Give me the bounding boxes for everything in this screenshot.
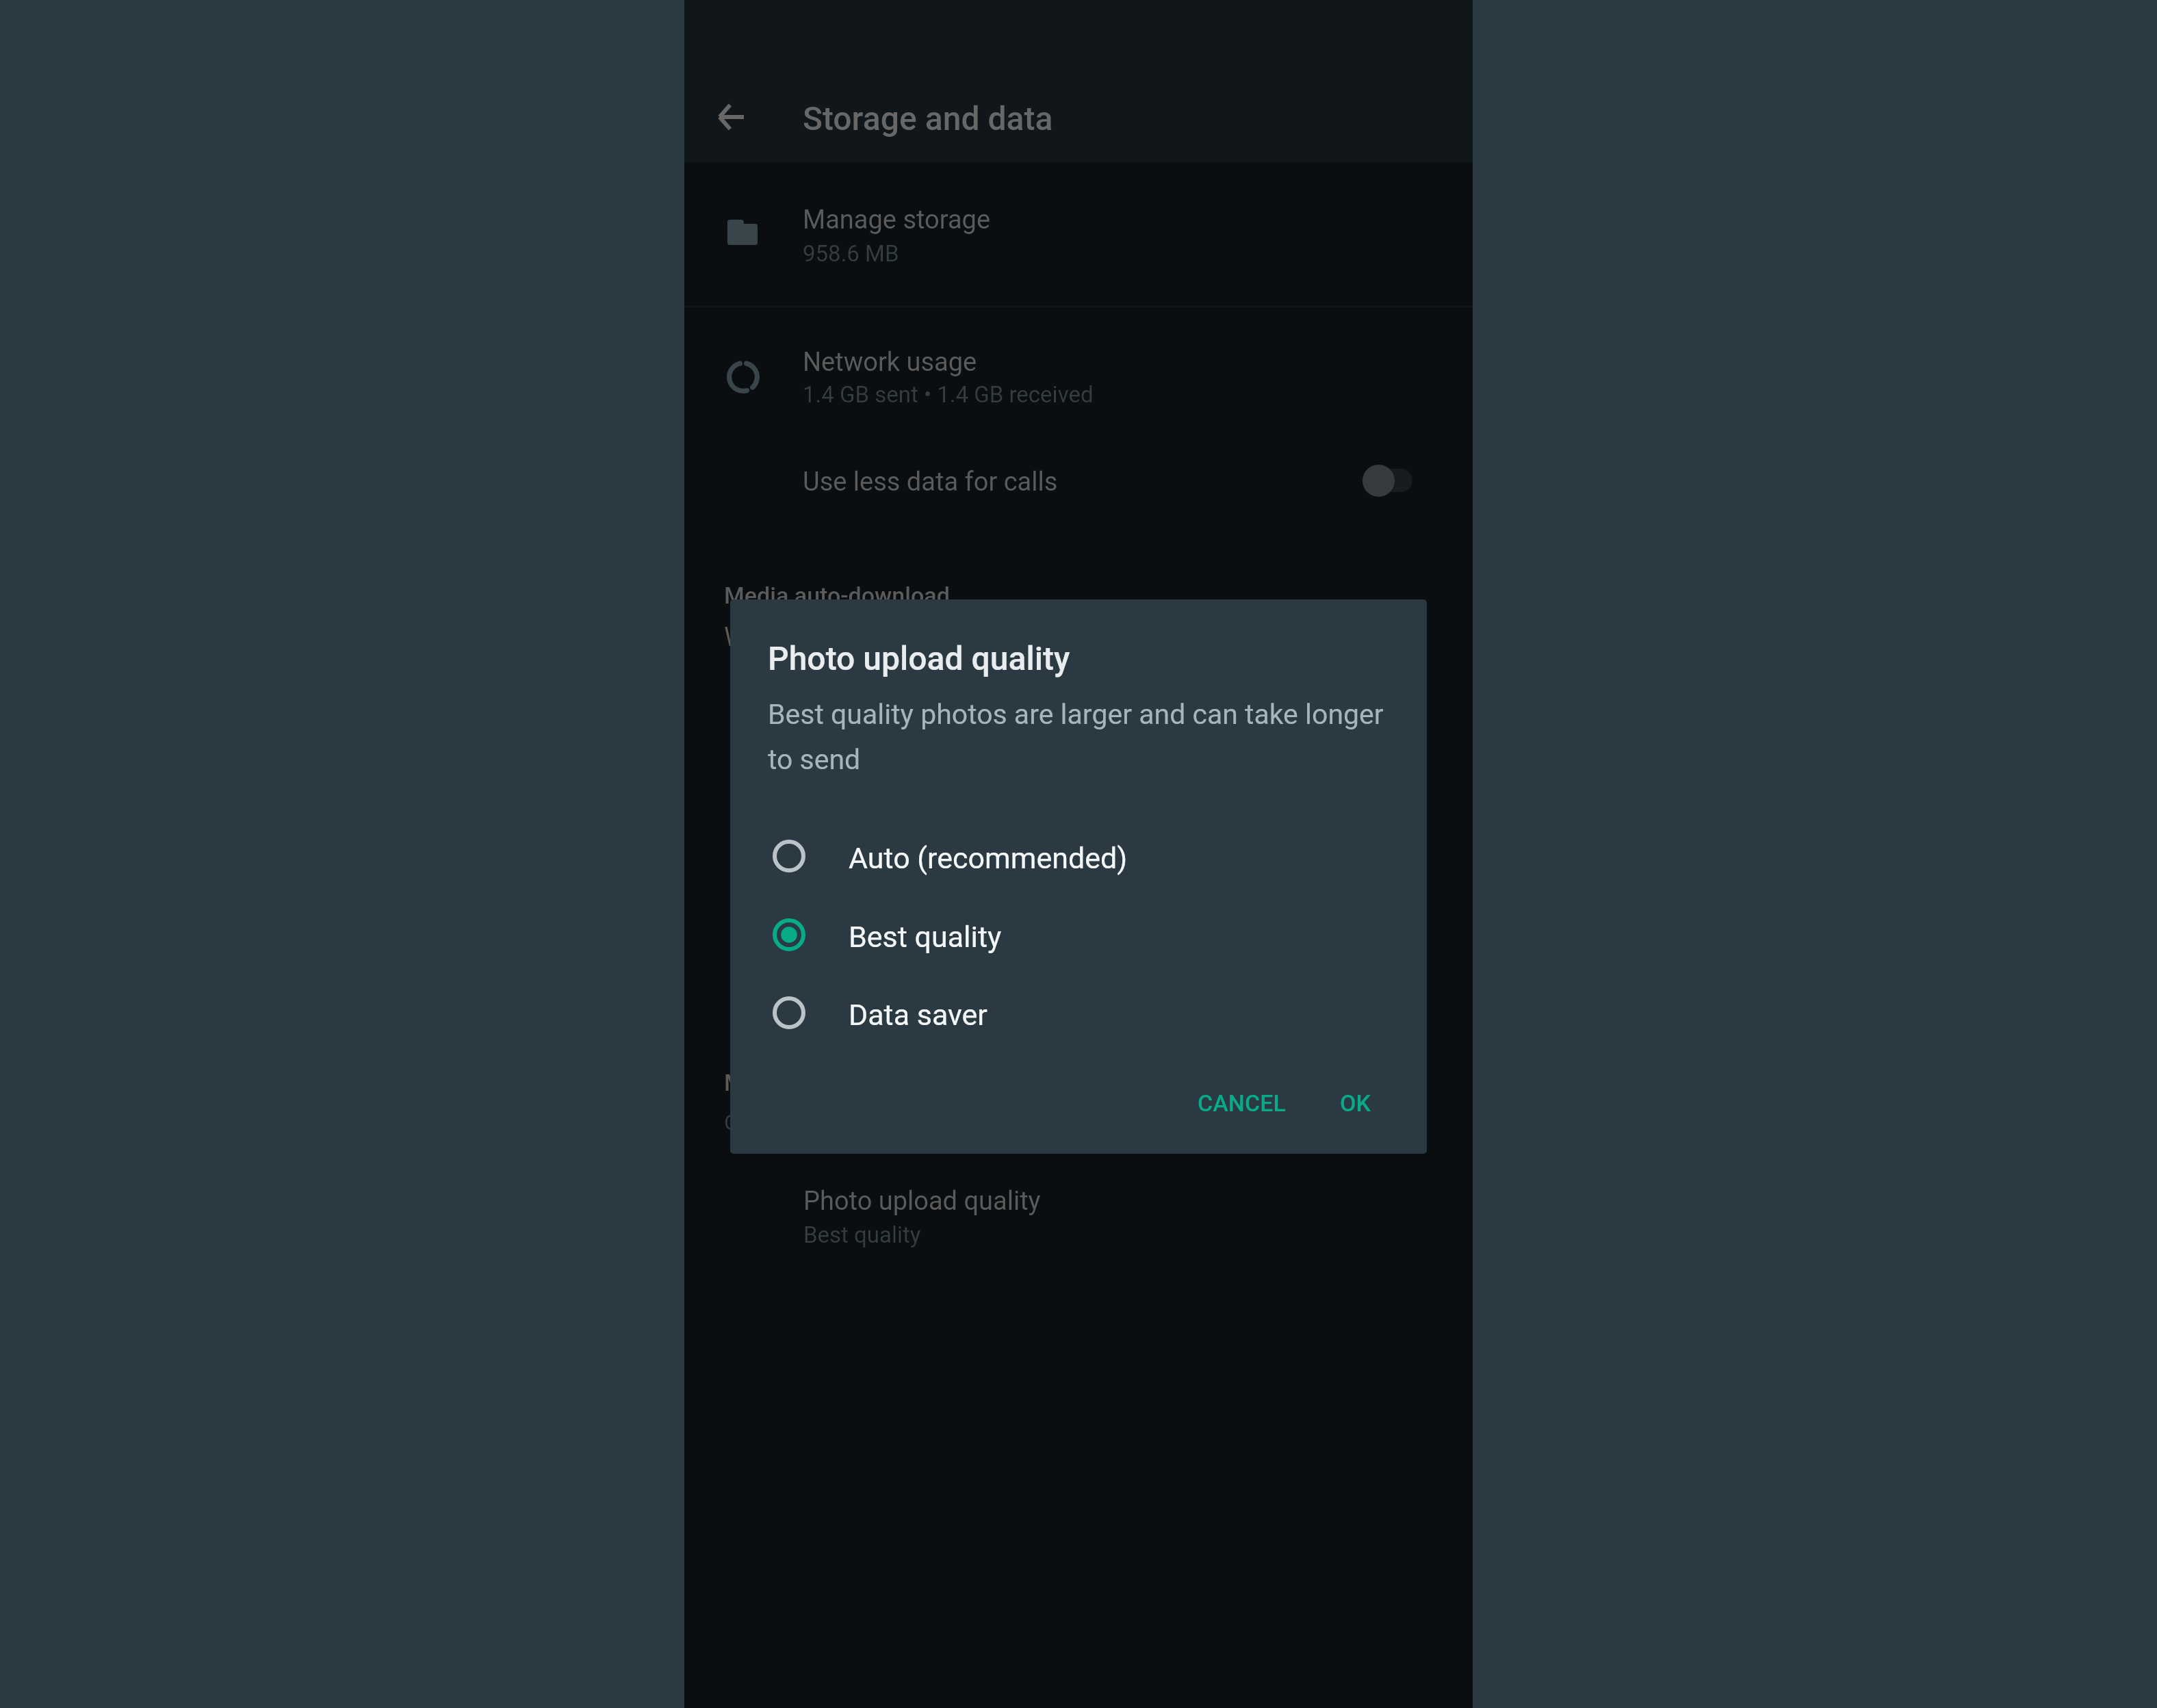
- staticText: When using mobile data: [724, 622, 1003, 653]
- staticText: Data saver: [849, 998, 987, 1032]
- staticText: Network usage: [803, 347, 977, 378]
- button[interactable]: Data saver: [730, 974, 1427, 1052]
- button[interactable]: Photo upload quality: [684, 1163, 1473, 1273]
- staticText: Auto (recommended): [849, 841, 1128, 875]
- button[interactable]: Best quality: [730, 896, 1427, 974]
- staticText: Media auto-download: [724, 582, 950, 609]
- staticText: CANCEL: [1198, 1089, 1286, 1117]
- staticText: Best quality: [849, 920, 1002, 954]
- staticText: Manage storage: [803, 205, 991, 235]
- staticText: Choose the upload quality: [724, 1109, 977, 1135]
- staticText: to send: [768, 743, 861, 776]
- staticText: Photo upload quality: [768, 639, 1070, 677]
- staticText: 1.4 GB sent • 1.4 GB received: [803, 381, 1094, 408]
- button[interactable]: When using mobile data: [684, 616, 1473, 698]
- staticText: 958.6 MB: [803, 240, 899, 267]
- button[interactable]: Network usage: [684, 322, 1473, 438]
- button[interactable]: Manage storage: [684, 179, 1473, 296]
- staticText: Media upload quality: [724, 1069, 941, 1096]
- staticText: Best quality photos are larger and can t…: [768, 698, 1384, 731]
- button[interactable]: Back: [710, 96, 751, 138]
- staticText: Best quality: [803, 1221, 921, 1248]
- button[interactable]: CANCEL: [1177, 1070, 1306, 1136]
- button[interactable]: Auto (recommended): [730, 817, 1427, 895]
- button[interactable]: Use less data for calls: [684, 443, 1473, 539]
- staticText: OK: [1340, 1089, 1371, 1117]
- button[interactable]: Use less data for calls: [1345, 445, 1431, 517]
- staticText: Storage and data: [803, 99, 1053, 138]
- button[interactable]: OK: [1319, 1070, 1391, 1136]
- staticText: Use less data for calls: [803, 467, 1058, 497]
- staticText: Photo upload quality: [803, 1186, 1041, 1217]
